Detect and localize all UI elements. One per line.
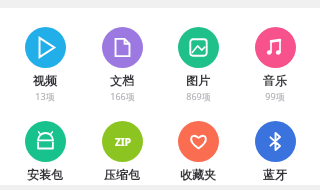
button[interactable]: 音乐	[244, 27, 306, 102]
staticText: 收藏夹	[180, 167, 216, 182]
staticText: 音乐	[263, 73, 287, 88]
button[interactable]: 蓝牙	[244, 121, 306, 185]
button[interactable]: 压缩包	[91, 121, 153, 185]
staticText: 166项	[110, 90, 135, 102]
staticText: 图片	[186, 73, 210, 88]
button[interactable]: 图片	[167, 27, 229, 102]
staticText: 压缩包	[104, 167, 140, 182]
staticText: ZIP	[115, 135, 131, 149]
button[interactable]: 收藏夹	[167, 121, 229, 185]
staticText: 99项	[265, 90, 285, 102]
staticText: 安装包	[27, 167, 63, 182]
staticText: 蓝牙	[263, 167, 287, 182]
staticText: 869项	[186, 90, 211, 102]
button[interactable]: 安装包	[14, 121, 76, 185]
staticText: 13项	[35, 90, 55, 102]
staticText: 视频	[33, 73, 57, 88]
button[interactable]: 文档	[91, 27, 153, 102]
button[interactable]: 视频	[14, 27, 76, 102]
staticText: 文档	[110, 73, 134, 88]
